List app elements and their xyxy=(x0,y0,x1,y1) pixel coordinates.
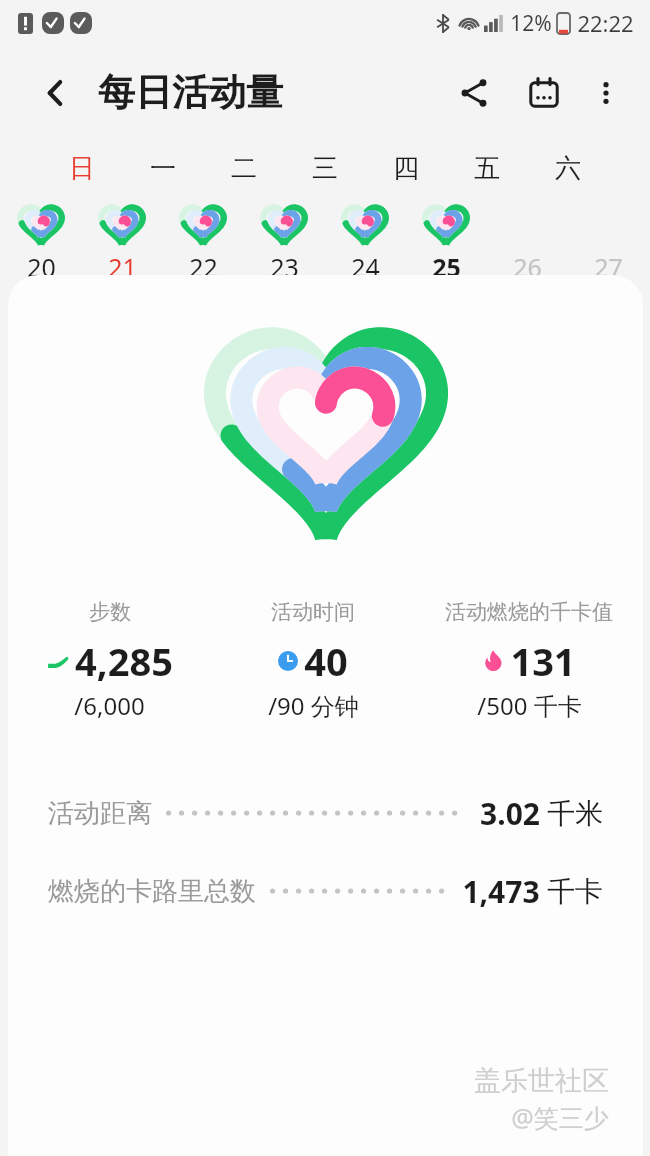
staticText: 22:22 xyxy=(577,8,634,38)
staticText: 24 xyxy=(351,250,380,284)
staticText: 21 xyxy=(108,250,137,284)
staticText: 12% xyxy=(510,9,552,38)
button[interactable]: Calendar xyxy=(518,67,570,119)
staticText: 22 xyxy=(189,250,218,284)
button[interactable]: Back xyxy=(34,71,78,115)
staticText: 千米 xyxy=(547,796,603,831)
button[interactable]: Share xyxy=(448,67,500,119)
staticText: 23 xyxy=(270,250,299,284)
button[interactable]: 26 xyxy=(486,198,567,284)
staticText: 活动燃烧的千卡值 xyxy=(445,599,613,625)
staticText: 27 xyxy=(594,250,623,284)
button[interactable]: 22 xyxy=(162,198,243,284)
staticText: 二 xyxy=(231,152,257,185)
button[interactable]: 27 xyxy=(567,198,648,284)
staticText: 3.02 xyxy=(480,793,540,834)
staticText: 燃烧的卡路里总数 xyxy=(48,875,256,908)
staticText: /500 千卡 xyxy=(477,689,582,722)
button[interactable]: More options xyxy=(580,67,632,119)
staticText: 4,285 xyxy=(75,635,173,687)
staticText: 25 xyxy=(432,250,461,284)
staticText: 步数 xyxy=(89,599,131,625)
button[interactable]: 21 xyxy=(81,198,162,284)
button[interactable]: 20 xyxy=(0,198,81,284)
staticText: 活动时间 xyxy=(271,599,355,625)
button[interactable]: 活动时间 xyxy=(211,599,415,722)
button[interactable]: 活动燃烧的千卡值 xyxy=(415,599,643,722)
staticText: 四 xyxy=(393,152,419,185)
button[interactable]: 燃烧的卡路里总数 xyxy=(8,852,643,930)
staticText: 活动距离 xyxy=(48,797,152,830)
staticText: 千卡 xyxy=(547,874,603,909)
staticText: /90 分钟 xyxy=(268,689,359,722)
staticText: 20 xyxy=(27,250,56,284)
staticText: 一 xyxy=(150,152,176,185)
staticText: /6,000 xyxy=(74,689,145,722)
staticText: 131 xyxy=(510,635,576,687)
button[interactable]: 步数 xyxy=(8,599,211,722)
button[interactable]: 活动距离 xyxy=(8,774,643,852)
button[interactable]: 23 xyxy=(243,198,324,284)
staticText: 每日活动量 xyxy=(98,69,283,116)
staticText: 40 xyxy=(304,635,348,687)
staticText: 五 xyxy=(474,152,500,185)
staticText: 六 xyxy=(555,152,581,185)
staticText: @笑三少 xyxy=(511,1100,609,1134)
staticText: 日 xyxy=(69,152,95,185)
button[interactable]: 24 xyxy=(324,198,405,284)
staticText: 26 xyxy=(513,250,542,284)
button[interactable]: 25 xyxy=(405,198,486,284)
staticText: 1,473 xyxy=(462,871,540,912)
staticText: 盖乐世社区 xyxy=(474,1064,609,1098)
staticText: 三 xyxy=(312,152,338,185)
